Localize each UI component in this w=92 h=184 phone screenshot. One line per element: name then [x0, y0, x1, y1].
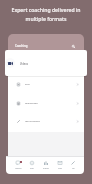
button[interactable]: Notes: [53, 156, 67, 174]
staticText: Spreadsheets: [25, 102, 38, 105]
staticText: Coaching: [15, 167, 22, 169]
button[interactable]: Videos: [5, 50, 87, 76]
button[interactable]: Text documents: [8, 113, 84, 132]
staticText: Coaching: [15, 44, 28, 48]
staticText: Goals: [30, 167, 34, 169]
staticText: Text documents: [25, 120, 40, 123]
button[interactable]: Log: [67, 156, 79, 174]
button[interactable]: Coaching: [11, 156, 25, 174]
button[interactable]: Spreadsheets: [8, 95, 84, 114]
staticText: PDFs: [25, 83, 30, 86]
staticText: Videos: [20, 62, 29, 66]
staticText: Expert coaching delivered in multiple fo…: [0, 7, 92, 22]
staticText: Progress: [43, 167, 49, 169]
staticText: Log: [72, 167, 75, 169]
button[interactable]: Goals: [25, 156, 39, 174]
button[interactable]: Search: [70, 43, 76, 49]
button[interactable]: Progress: [39, 156, 53, 174]
staticText: Notes: [58, 167, 62, 169]
button[interactable]: PDFs: [8, 76, 84, 95]
